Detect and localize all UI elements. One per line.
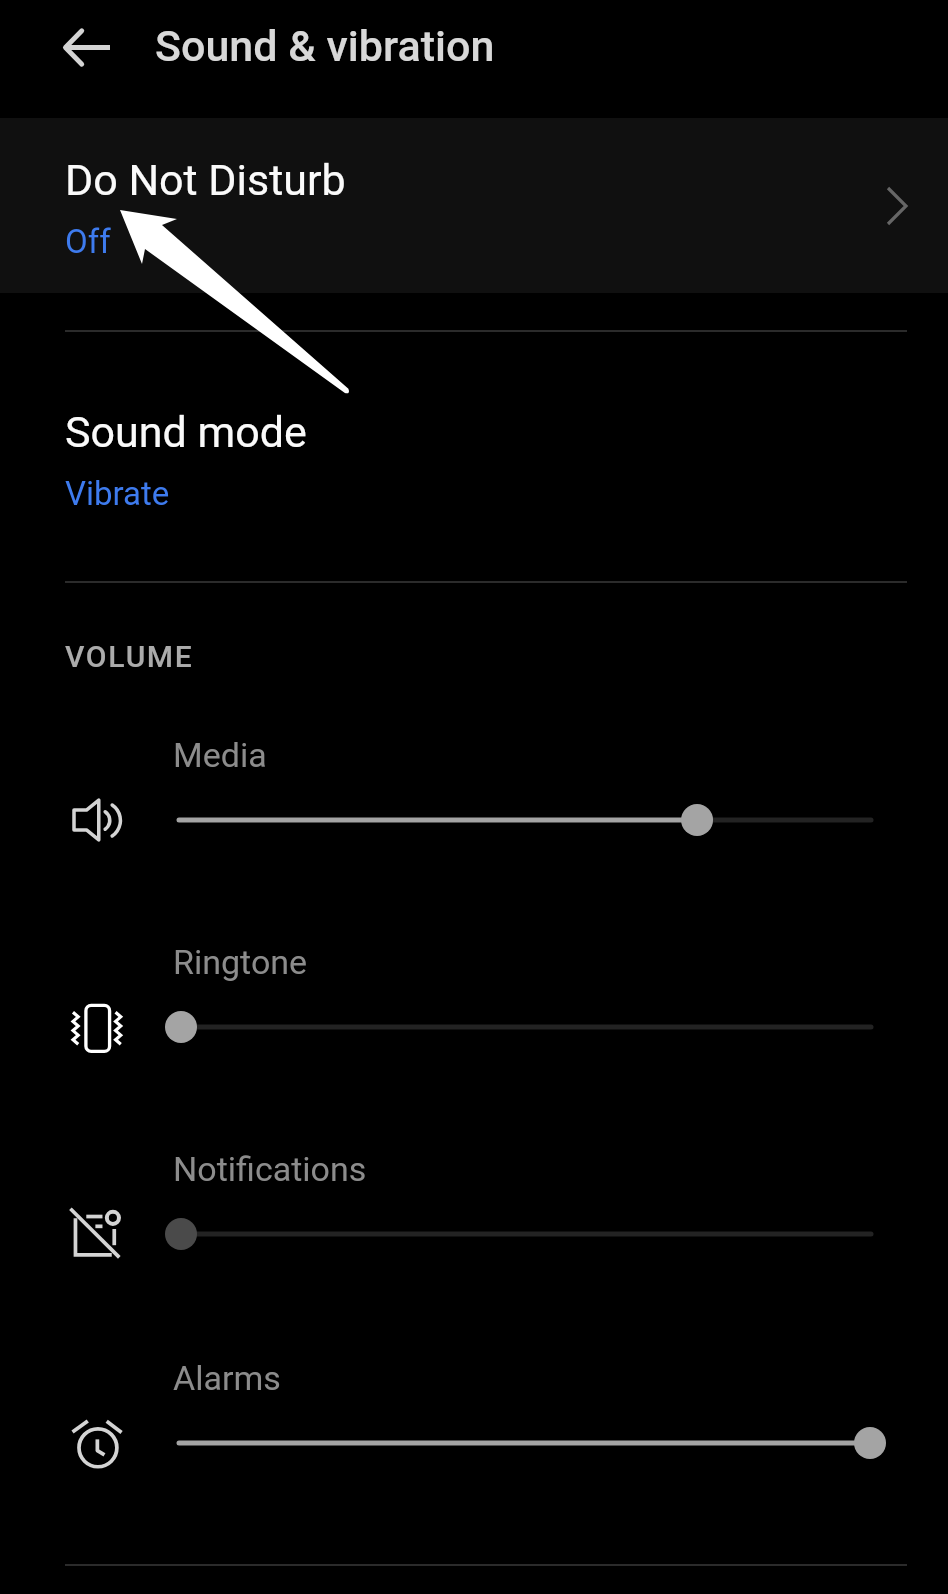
staticText: Do Not Disturb bbox=[65, 155, 346, 205]
button[interactable]: Back bbox=[40, 1, 132, 93]
staticText: VOLUME bbox=[65, 639, 194, 674]
staticText: Vibrate bbox=[65, 474, 170, 513]
button[interactable]: Ringtone bbox=[0, 917, 948, 1117]
button[interactable]: Sound mode bbox=[0, 331, 948, 579]
button[interactable]: Media bbox=[0, 710, 948, 910]
staticText: Notifications bbox=[173, 1149, 367, 1189]
button[interactable]: Do Not Disturb bbox=[0, 118, 948, 293]
staticText: Media bbox=[173, 735, 267, 775]
staticText: Alarms bbox=[173, 1358, 281, 1398]
button[interactable]: Notifications bbox=[0, 1124, 948, 1324]
staticText: Ringtone bbox=[173, 942, 308, 982]
staticText: Sound mode bbox=[65, 407, 307, 457]
staticText: Off bbox=[65, 222, 111, 261]
staticText: Sound & vibration bbox=[155, 21, 495, 71]
button[interactable]: Alarms bbox=[0, 1333, 948, 1533]
